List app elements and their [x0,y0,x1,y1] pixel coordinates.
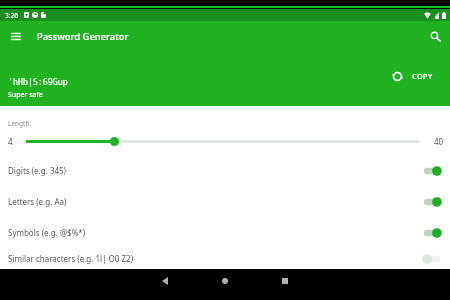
staticText: 'hHb|5:69Gup [8,76,68,87]
staticText: 40 [434,136,444,147]
staticText: 4 [8,136,13,147]
button[interactable]: Letters (e.g. Aa) [0,186,450,217]
button[interactable] [26,135,419,148]
staticText: Password Generator [37,30,129,43]
button[interactable]: Recent apps [270,266,300,296]
staticText: Symbols (e.g. @$%*) [8,227,86,238]
staticText: 3:26 [5,11,18,20]
button[interactable]: Home [210,266,240,296]
staticText: Super safe [8,90,43,100]
button[interactable]: Regenerate password [387,66,407,86]
button[interactable]: Back [150,266,180,296]
staticText: Digits (e.g. 345) [8,165,67,176]
button[interactable]: Symbols (e.g. @$%*) [0,217,450,248]
staticText: Length: [8,119,32,128]
staticText: Letters (e.g. Aa) [8,196,67,207]
button[interactable]: COPY [411,68,434,84]
button[interactable]: Search [420,21,450,52]
button[interactable]: Open navigation menu [0,21,32,52]
button[interactable]: Digits (e.g. 345) [0,155,450,186]
staticText: Similar characters (e.g. 1l| O0 Z2) [8,253,134,264]
button[interactable]: Similar characters (e.g. 1l| O0 Z2) [0,248,450,269]
staticText: COPY [412,71,433,81]
